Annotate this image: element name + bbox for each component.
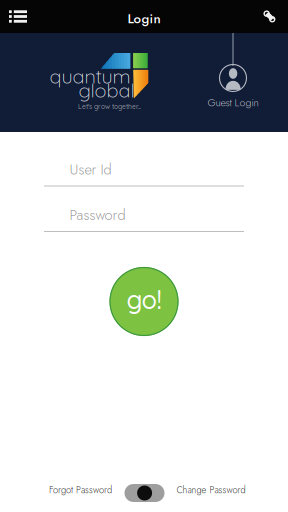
button[interactable]: Change Password <box>176 483 252 497</box>
button[interactable]: Call support <box>251 0 288 33</box>
staticText: Let's grow together... <box>78 102 141 111</box>
staticText: Login <box>127 9 160 28</box>
button[interactable]: go! <box>109 267 178 336</box>
button[interactable]: Guest Login <box>185 64 281 107</box>
button[interactable]: Forgot Password <box>49 483 119 497</box>
button[interactable]: Toggle password option <box>124 484 164 502</box>
staticText: quantum <box>49 63 130 88</box>
button[interactable]: Menu <box>0 0 36 33</box>
staticText: Password <box>69 204 125 226</box>
staticText: global <box>79 77 135 102</box>
button[interactable]: Password <box>44 201 244 232</box>
staticText: Forgot Password <box>49 483 112 497</box>
button[interactable]: User Id <box>44 156 244 186</box>
staticText: User Id <box>69 159 111 180</box>
staticText: Change Password <box>176 483 245 497</box>
staticText: go! <box>126 284 161 315</box>
staticText: Guest Login <box>207 95 258 110</box>
